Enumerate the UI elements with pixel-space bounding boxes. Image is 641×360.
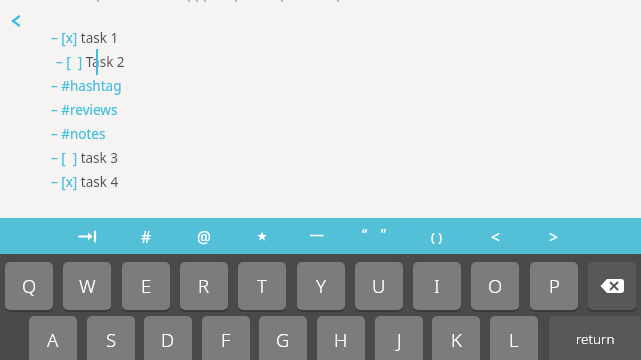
staticText: J [397, 327, 402, 352]
button[interactable]: S [87, 316, 135, 360]
button[interactable]: H [317, 316, 365, 360]
button[interactable]: Q [5, 262, 53, 310]
staticText: S [106, 327, 117, 352]
button[interactable]: I [413, 262, 461, 310]
button[interactable] [4, 10, 30, 34]
button[interactable] [300, 219, 340, 254]
staticText: O [488, 273, 503, 298]
button[interactable]: G [259, 316, 307, 360]
button[interactable]: ( ) [417, 219, 457, 254]
staticText: ” [381, 224, 387, 243]
staticText: L [509, 327, 519, 352]
staticText: – [x] task 1 [51, 29, 119, 47]
staticText: – #reviews [51, 101, 118, 119]
staticText: F [221, 327, 231, 352]
staticText: U [372, 273, 386, 298]
staticText: – [ ] Task 2 [56, 53, 125, 71]
button[interactable]: R [180, 262, 228, 310]
staticText: G [276, 327, 290, 352]
button[interactable]: return [549, 316, 641, 360]
button[interactable]: @ [184, 219, 224, 254]
button[interactable]: L [490, 316, 538, 360]
button[interactable]: A [29, 316, 77, 360]
staticText: < [491, 226, 500, 247]
button[interactable]: K [432, 316, 480, 360]
staticText: “ [362, 224, 368, 243]
button[interactable]: D [144, 316, 192, 360]
staticText: – [ ] task 3 [51, 149, 119, 167]
button[interactable] [67, 219, 107, 254]
staticText: ( ) [431, 228, 443, 246]
staticText: P [549, 273, 560, 298]
staticText: D [161, 327, 175, 352]
staticText: R [198, 273, 210, 298]
staticText: – #notes [51, 125, 106, 143]
button[interactable]: W [63, 262, 111, 310]
staticText: Q [22, 273, 37, 298]
button[interactable]: E [122, 262, 170, 310]
button[interactable]: P [530, 262, 578, 310]
staticText: return [576, 330, 615, 348]
staticText: E [141, 273, 152, 298]
button[interactable]: U [355, 262, 403, 310]
staticText: A [47, 327, 59, 352]
button[interactable]: J [375, 316, 423, 360]
button[interactable]: O [471, 262, 519, 310]
staticText: Y [316, 273, 326, 298]
button[interactable]: > [533, 219, 573, 254]
button[interactable]: # [126, 219, 166, 254]
button[interactable] [242, 219, 282, 254]
button[interactable]: F [202, 316, 250, 360]
staticText: K [451, 327, 462, 352]
button[interactable]: < [475, 219, 515, 254]
button[interactable]: Y [297, 262, 345, 310]
staticText: # [141, 226, 152, 247]
button[interactable]: “ [358, 219, 398, 254]
button[interactable] [588, 262, 636, 310]
staticText: H [334, 327, 348, 352]
staticText: > [549, 226, 558, 247]
button[interactable]: T [238, 262, 286, 310]
staticText: I [434, 273, 440, 298]
staticText: W [79, 273, 96, 298]
staticText: – [x] task 4 [51, 173, 119, 191]
staticText: – #hashtag [51, 77, 122, 95]
staticText: T [257, 273, 267, 298]
staticText: @ [197, 226, 211, 247]
